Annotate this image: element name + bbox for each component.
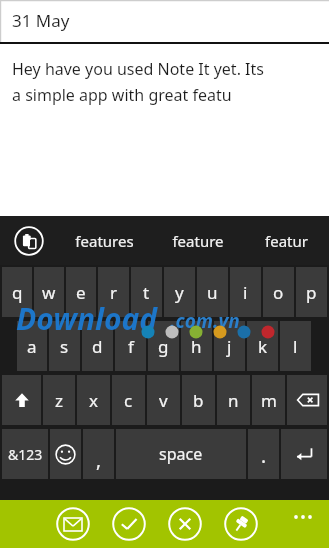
staticText: n: [228, 389, 239, 412]
button[interactable]: Pin: [224, 507, 258, 541]
button[interactable]: f: [115, 321, 146, 371]
button[interactable]: g: [148, 321, 179, 371]
button[interactable]: u: [197, 267, 228, 317]
button[interactable]: More options: [287, 506, 319, 528]
staticText: a simple app with great featu: [12, 84, 232, 106]
staticText: featur: [265, 231, 308, 251]
button[interactable]: Emoji: [50, 429, 81, 479]
staticText: j: [227, 335, 232, 358]
button[interactable]: Email: [56, 507, 90, 541]
button[interactable]: space: [116, 429, 246, 479]
button[interactable]: t: [131, 267, 162, 317]
button[interactable]: w: [34, 267, 64, 317]
button[interactable]: Shift: [2, 375, 41, 425]
staticText: feature: [172, 231, 224, 251]
button[interactable]: k: [247, 321, 278, 371]
button[interactable]: j: [214, 321, 245, 371]
button[interactable]: Clipboard: [0, 216, 58, 265]
button[interactable]: Save: [112, 507, 146, 541]
button[interactable]: m: [252, 375, 285, 425]
button[interactable]: r: [98, 267, 129, 317]
button[interactable]: ,: [83, 429, 114, 479]
button[interactable]: Enter: [281, 429, 327, 479]
staticText: m: [261, 389, 277, 412]
button[interactable]: y: [164, 267, 195, 317]
button[interactable]: Hey have you used Note It yet. Its: [0, 44, 329, 216]
button[interactable]: o: [263, 267, 294, 317]
staticText: Hey have you used Note It yet. Its: [12, 58, 264, 80]
staticText: y: [175, 281, 184, 304]
button[interactable]: v: [147, 375, 180, 425]
staticText: .com.vn: [170, 308, 240, 334]
staticText: p: [306, 281, 317, 304]
button[interactable]: n: [217, 375, 250, 425]
button[interactable]: Delete: [168, 507, 202, 541]
staticText: g: [158, 335, 169, 358]
staticText: t: [143, 281, 150, 304]
button[interactable]: s: [49, 321, 80, 371]
staticText: space: [159, 443, 203, 465]
staticText: b: [193, 389, 204, 412]
button[interactable]: h: [181, 321, 212, 371]
staticText: l: [293, 335, 298, 358]
staticText: features: [75, 231, 134, 251]
staticText: z: [55, 389, 63, 412]
button[interactable]: q: [2, 267, 32, 317]
staticText: i: [243, 281, 248, 304]
staticText: d: [92, 335, 103, 358]
button[interactable]: z: [43, 375, 75, 425]
staticText: s: [60, 335, 69, 358]
staticText: ,: [96, 447, 102, 473]
staticText: f: [128, 335, 134, 358]
button[interactable]: p: [296, 267, 327, 317]
button[interactable]: 31 May: [0, 0, 329, 42]
staticText: k: [258, 335, 268, 358]
button[interactable]: l: [280, 321, 311, 371]
staticText: r: [110, 281, 118, 304]
button[interactable]: d: [82, 321, 113, 371]
button[interactable]: .: [248, 429, 279, 479]
button[interactable]: x: [77, 375, 110, 425]
staticText: o: [273, 281, 284, 304]
button[interactable]: e: [66, 267, 96, 317]
staticText: w: [42, 281, 56, 304]
button[interactable]: i: [230, 267, 261, 317]
staticText: a: [27, 335, 37, 358]
staticText: h: [191, 335, 202, 358]
staticText: v: [159, 389, 168, 412]
button[interactable]: c: [112, 375, 145, 425]
button[interactable]: featur: [244, 216, 329, 265]
button[interactable]: Backspace: [287, 375, 327, 425]
button[interactable]: feature: [151, 216, 244, 265]
button[interactable]: b: [182, 375, 215, 425]
button[interactable]: a: [17, 321, 47, 371]
staticText: q: [12, 281, 23, 304]
staticText: Download: [16, 298, 158, 339]
staticText: c: [124, 389, 133, 412]
staticText: e: [76, 281, 86, 304]
staticText: 31 May: [12, 9, 70, 32]
button[interactable]: &123: [2, 429, 48, 479]
button[interactable]: features: [58, 216, 151, 265]
staticText: u: [207, 281, 218, 304]
staticText: .: [261, 443, 267, 469]
staticText: x: [89, 389, 98, 412]
staticText: &123: [8, 445, 43, 464]
